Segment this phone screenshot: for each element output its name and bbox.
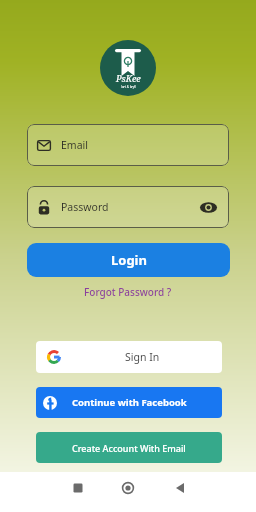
button[interactable] — [68, 478, 88, 498]
button[interactable]: Continue with Facebook — [36, 387, 222, 418]
staticText: Login — [111, 251, 147, 269]
button[interactable] — [118, 478, 138, 498]
staticText: Create Account With Email — [72, 442, 186, 454]
staticText: Password — [61, 200, 109, 214]
button[interactable]: Email — [27, 124, 229, 166]
button[interactable]: Password — [27, 186, 229, 228]
staticText: PsKee — [116, 72, 141, 84]
button[interactable] — [170, 478, 190, 498]
staticText: (art & bryl) — [121, 85, 136, 89]
staticText: Email — [61, 138, 88, 152]
button[interactable]: Forgot Password ? — [84, 285, 172, 299]
button[interactable]: Login — [27, 243, 230, 277]
button[interactable] — [200, 201, 217, 214]
staticText: Continue with Facebook — [72, 396, 187, 409]
staticText: Sign In — [125, 350, 160, 364]
button[interactable]: Create Account With Email — [36, 432, 222, 463]
button[interactable]: Sign In — [36, 341, 222, 373]
